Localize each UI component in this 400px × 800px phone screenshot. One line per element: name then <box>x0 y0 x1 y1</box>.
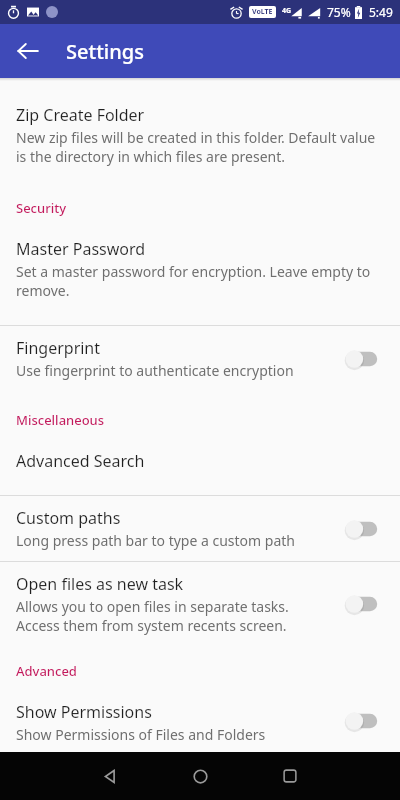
staticText: 4G <box>282 6 292 16</box>
staticText: Security <box>16 199 66 217</box>
staticText: Open files as new task <box>16 573 184 595</box>
button[interactable]: Back <box>78 752 142 800</box>
staticText: 5:49 <box>369 4 393 20</box>
staticText: Zip Create Folder <box>16 104 145 126</box>
staticText: Advanced <box>16 662 77 680</box>
staticText: Advanced Search <box>16 450 145 472</box>
button[interactable]: Show Permissions <box>0 690 400 752</box>
staticText: Show Permissions of Files and Folders <box>16 725 266 741</box>
staticText: Show Permissions <box>16 701 152 723</box>
button[interactable]: Zip Create Folder <box>0 93 400 177</box>
staticText: Settings <box>66 38 144 65</box>
staticText: Set a master password for encryption. Le… <box>16 262 380 300</box>
staticText: VoLTE <box>252 7 273 17</box>
staticText: Long press path bar to type a custom pat… <box>16 531 295 550</box>
staticText: Custom paths <box>16 507 121 529</box>
staticText: Use fingerprint to authenticate encrypti… <box>16 361 294 380</box>
staticText: Allows you to open files in separate tas… <box>16 597 328 635</box>
button[interactable]: Custom paths <box>0 496 400 561</box>
button[interactable]: Home <box>168 752 232 800</box>
button[interactable]: Open files as new task <box>0 562 400 646</box>
staticText: Fingerprint <box>16 337 101 359</box>
button[interactable]: Master Password <box>0 227 400 311</box>
button[interactable]: Toggle <box>336 703 388 739</box>
staticText: Master Password <box>16 238 146 260</box>
button[interactable]: Back <box>6 29 50 73</box>
button[interactable]: Toggle <box>336 341 388 377</box>
staticText: 75% <box>327 4 351 20</box>
button[interactable]: Fingerprint <box>0 326 400 391</box>
button[interactable]: Recents <box>258 752 322 800</box>
staticText: Miscellaneous <box>16 411 105 429</box>
staticText: New zip files will be created in this fo… <box>16 128 380 166</box>
button[interactable]: Toggle <box>336 586 388 622</box>
button[interactable]: Toggle <box>336 511 388 547</box>
button[interactable]: Advanced Search <box>0 439 400 483</box>
